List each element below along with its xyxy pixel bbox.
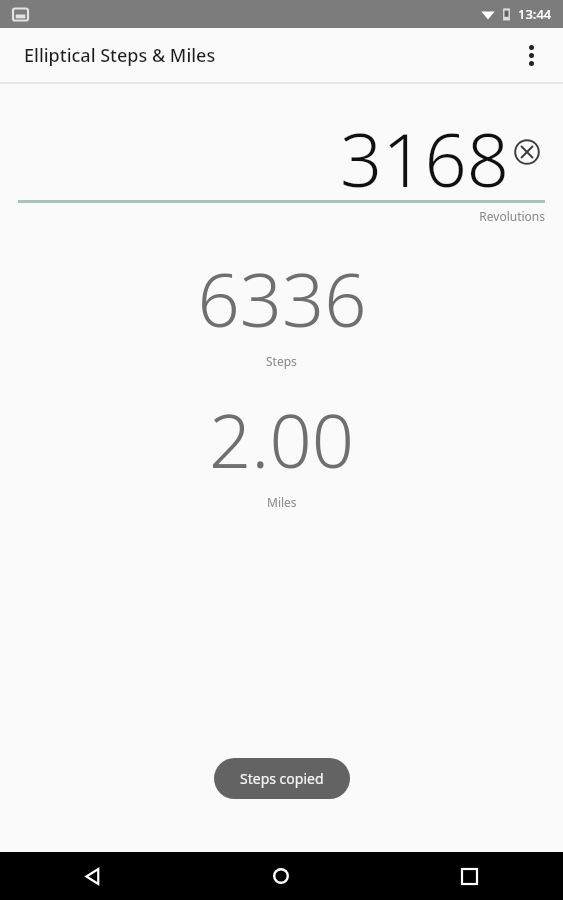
button[interactable]: More options [509, 33, 553, 77]
staticText: Steps [266, 353, 297, 369]
staticText: Revolutions [18, 208, 545, 224]
staticText: 13:44 [518, 5, 552, 23]
staticText: 2.00 [209, 389, 354, 490]
staticText: 3168 [339, 108, 509, 196]
staticText: 6336 [197, 248, 367, 349]
button[interactable]: Clear [509, 134, 545, 170]
button[interactable]: Recent apps [375, 852, 563, 900]
staticText: Miles [267, 494, 297, 510]
staticText: Steps copied [240, 769, 324, 788]
button[interactable]: Steps copied [214, 758, 350, 799]
button[interactable]: Home [187, 852, 375, 900]
button[interactable]: Back [0, 852, 187, 900]
staticText: Elliptical Steps & Miles [24, 43, 216, 68]
